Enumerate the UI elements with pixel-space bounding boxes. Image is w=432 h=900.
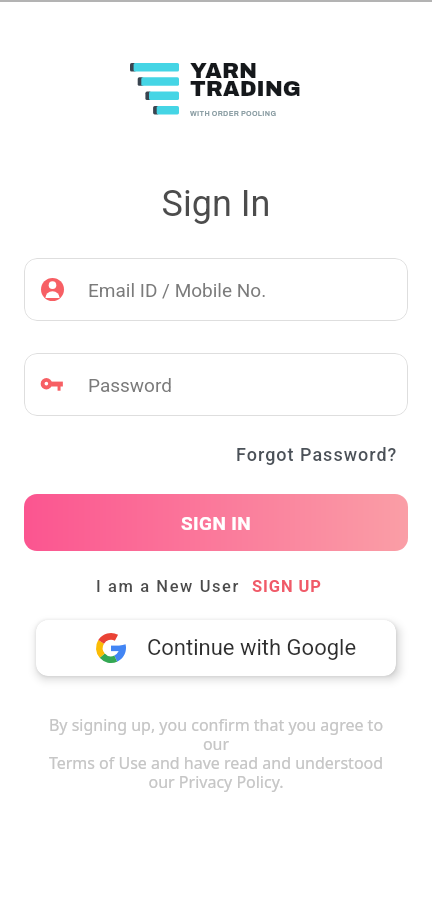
other: User (41, 278, 64, 301)
button[interactable]: Forgot Password? (232, 441, 402, 468)
staticText: Email ID / Mobile No. (88, 279, 267, 301)
button[interactable]: SIGN UP (249, 574, 325, 599)
button[interactable]: Password (24, 353, 408, 416)
other: Password (41, 373, 64, 396)
staticText: SIGN UP (252, 577, 322, 596)
staticText: By signing up, you confirm that you agre… (44, 714, 388, 792)
button[interactable]: Continue with Google (36, 620, 396, 676)
staticText: Forgot Password? (236, 444, 398, 465)
staticText: Sign In (0, 183, 432, 225)
staticText: WITH ORDER POOLING (190, 110, 277, 118)
button[interactable]: User (24, 258, 408, 321)
staticText: Password (88, 374, 172, 396)
staticText: SIGN IN (181, 512, 252, 534)
staticText: I am a New User (96, 577, 240, 596)
staticText: Continue with Google (147, 635, 357, 661)
staticText: TRADING (190, 77, 301, 101)
staticText: YARN (190, 59, 258, 83)
button[interactable]: SIGN IN (24, 494, 408, 551)
